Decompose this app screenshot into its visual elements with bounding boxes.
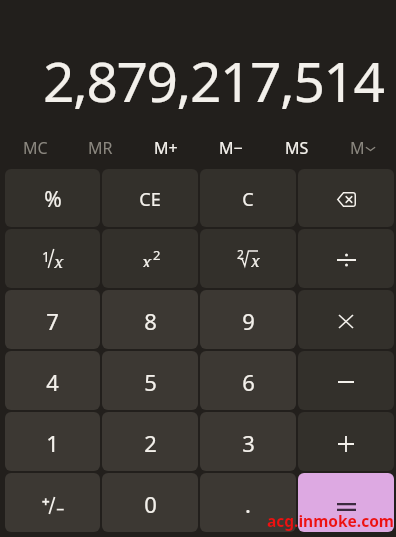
button[interactable]: 6 — [200, 351, 296, 410]
button[interactable]: Reciprocal — [5, 229, 100, 288]
button[interactable]: 3 — [200, 412, 296, 471]
button[interactable]: 7 — [5, 290, 100, 349]
button[interactable]: 5 — [102, 351, 198, 410]
staticText: . — [245, 489, 251, 519]
staticText: 0 — [144, 489, 157, 519]
button[interactable]: Square root — [200, 229, 296, 288]
button[interactable]: % — [5, 169, 100, 227]
staticText: x — [142, 250, 152, 267]
button[interactable]: Square — [102, 229, 198, 288]
button[interactable]: Backspace — [298, 169, 394, 227]
staticText: x — [251, 250, 260, 267]
button[interactable]: 9 — [200, 290, 296, 349]
staticText: 1 — [42, 247, 51, 266]
staticText: 6 — [242, 367, 255, 397]
staticText: x — [54, 250, 64, 269]
button[interactable]: 8 — [102, 290, 198, 349]
button[interactable]: . — [200, 473, 296, 532]
button[interactable]: Divide — [298, 229, 394, 288]
button[interactable]: Plus — [298, 412, 394, 471]
staticText: 2,879,217,514 — [43, 43, 384, 118]
staticText: M — [350, 137, 365, 159]
button[interactable]: M+ — [133, 128, 198, 168]
staticText: 5 — [144, 367, 157, 397]
staticText: acg.inmoke.com — [267, 510, 394, 531]
staticText: 2 — [153, 246, 161, 263]
staticText: M− — [219, 137, 243, 159]
staticText: 2 — [237, 246, 244, 262]
button[interactable]: Minus — [298, 351, 394, 410]
button[interactable]: CE — [102, 169, 198, 227]
staticText: MR — [88, 137, 113, 159]
staticText: 4 — [46, 367, 59, 397]
staticText: 7 — [46, 306, 59, 336]
staticText: MS — [285, 137, 309, 159]
staticText: 8 — [144, 306, 157, 336]
button[interactable]: M− — [198, 128, 264, 168]
button[interactable]: More memory options — [330, 128, 396, 168]
button[interactable]: MR — [68, 128, 133, 168]
button[interactable]: Equals — [298, 473, 394, 532]
button[interactable]: C — [200, 169, 296, 227]
button[interactable]: MS — [264, 128, 330, 168]
staticText: % — [44, 185, 62, 214]
staticText: CE — [139, 187, 161, 212]
staticText: 9 — [242, 306, 255, 336]
button[interactable]: 4 — [5, 351, 100, 410]
staticText: 3 — [242, 428, 255, 458]
button[interactable]: 0 — [102, 473, 198, 532]
button[interactable]: 2 — [102, 412, 198, 471]
staticText: MC — [23, 137, 48, 159]
button[interactable]: Positive negative — [5, 473, 100, 532]
staticText: M+ — [154, 137, 178, 159]
staticText: C — [242, 187, 254, 212]
button[interactable]: MC — [3, 128, 68, 168]
staticText: 1 — [46, 428, 59, 458]
button[interactable]: Multiply — [298, 290, 394, 349]
staticText: 2 — [144, 428, 157, 458]
button[interactable]: 1 — [5, 412, 100, 471]
